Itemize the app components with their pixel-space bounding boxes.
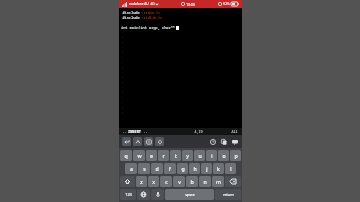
- staticText: space: [185, 192, 195, 197]
- staticText: e: [150, 152, 153, 159]
- staticText: x: [152, 178, 155, 185]
- staticText: t: [175, 152, 177, 159]
- button[interactable]: space: [165, 189, 214, 200]
- staticText: int main(int argc, char**: [121, 25, 175, 30]
- staticText: ~: [121, 100, 124, 105]
- button[interactable]: Keyboard: [230, 137, 239, 146]
- staticText: ~: [121, 50, 124, 55]
- button[interactable]: t: [170, 150, 181, 161]
- staticText: #include: [121, 10, 141, 15]
- staticText: ~: [121, 60, 124, 65]
- staticText: ~: [121, 45, 124, 50]
- staticText: ~: [121, 105, 124, 110]
- button[interactable]: 123: [120, 189, 136, 200]
- staticText: 4,19: [194, 129, 203, 134]
- button[interactable]: c: [160, 176, 172, 187]
- button[interactable]: x: [148, 176, 159, 187]
- staticText: z: [140, 178, 143, 185]
- button[interactable]: m: [212, 176, 224, 187]
- button[interactable]: History: [208, 137, 217, 146]
- staticText: 123: [125, 192, 132, 197]
- staticText: 4G: [150, 2, 155, 6]
- staticText: ~: [121, 75, 124, 80]
- staticText: v: [178, 178, 181, 185]
- staticText: b: [190, 178, 194, 185]
- staticText: All: [231, 129, 238, 134]
- staticText: 13:00: [186, 2, 195, 7]
- staticText: l: [230, 165, 232, 172]
- staticText: s: [143, 165, 146, 172]
- staticText: h: [193, 165, 197, 172]
- staticText: INSERT: [128, 129, 141, 134]
- button[interactable]: k: [213, 163, 224, 174]
- button[interactable]: l: [225, 163, 236, 174]
- staticText: <stdlib.h>: [141, 15, 163, 20]
- button[interactable]: v: [173, 176, 185, 187]
- staticText: ~: [121, 35, 124, 40]
- staticText: --: [121, 129, 128, 134]
- staticText: w: [137, 152, 142, 159]
- staticText: f: [169, 165, 171, 172]
- staticText: p: [234, 152, 238, 159]
- button[interactable]: z: [136, 176, 147, 187]
- button[interactable]: a: [125, 163, 137, 174]
- staticText: ~: [121, 95, 124, 100]
- staticText: 62%: [223, 2, 230, 6]
- staticText: q: [124, 152, 128, 159]
- button[interactable]: Shift: [120, 176, 135, 187]
- button[interactable]: w: [133, 150, 145, 161]
- staticText: <stdio.h>: [141, 10, 161, 15]
- staticText: ~: [121, 40, 124, 45]
- button[interactable]: return: [215, 189, 241, 200]
- button[interactable]: o: [218, 150, 229, 161]
- staticText: j: [206, 165, 208, 172]
- button[interactable]: b: [186, 176, 198, 187]
- button[interactable]: d: [151, 163, 163, 174]
- staticText: ~: [121, 55, 124, 60]
- button[interactable]: j: [201, 163, 212, 174]
- button[interactable]: Copy: [219, 137, 228, 146]
- button[interactable]: y: [182, 150, 193, 161]
- button[interactable]: Backspace: [225, 176, 241, 187]
- staticText: --: [141, 129, 148, 134]
- staticText: k: [217, 165, 220, 172]
- button[interactable]: s: [138, 163, 150, 174]
- button[interactable]: n: [199, 176, 211, 187]
- staticText: y: [186, 152, 189, 159]
- staticText: d: [155, 165, 159, 172]
- staticText: m: [216, 178, 221, 185]
- button[interactable]: g: [177, 163, 188, 174]
- button[interactable]: Voice input: [151, 189, 164, 200]
- staticText: ~: [121, 90, 124, 95]
- button[interactable]: u: [194, 150, 205, 161]
- staticText: ~: [121, 85, 124, 90]
- staticText: ~: [121, 65, 124, 70]
- staticText: o: [222, 152, 226, 159]
- staticText: #include: [121, 15, 141, 20]
- staticText: ~: [121, 70, 124, 75]
- staticText: ~: [121, 80, 124, 85]
- button[interactable]: r: [158, 150, 169, 161]
- staticText: c: [165, 178, 168, 185]
- button[interactable]: e: [146, 150, 157, 161]
- staticText: return: [223, 192, 234, 197]
- button[interactable]: Arrow keys: [155, 137, 164, 146]
- button[interactable]: Escape: [122, 137, 131, 146]
- staticText: ~: [121, 110, 124, 115]
- button[interactable]: i: [206, 150, 217, 161]
- staticText: g: [181, 165, 185, 172]
- staticText: i: [211, 152, 213, 159]
- staticText: n: [203, 178, 207, 185]
- button[interactable]: Change keyboard language: [137, 189, 150, 200]
- staticText: vodafone AU: [129, 2, 149, 6]
- staticText: a: [130, 165, 133, 172]
- button[interactable]: q: [120, 150, 132, 161]
- button[interactable]: h: [189, 163, 200, 174]
- button[interactable]: Tab: [144, 137, 153, 146]
- staticText: ~: [121, 30, 124, 35]
- button[interactable]: f: [164, 163, 176, 174]
- staticText: r: [162, 152, 165, 159]
- button[interactable]: p: [230, 150, 241, 161]
- button[interactable]: Control: [133, 137, 142, 146]
- staticText: u: [198, 152, 202, 159]
